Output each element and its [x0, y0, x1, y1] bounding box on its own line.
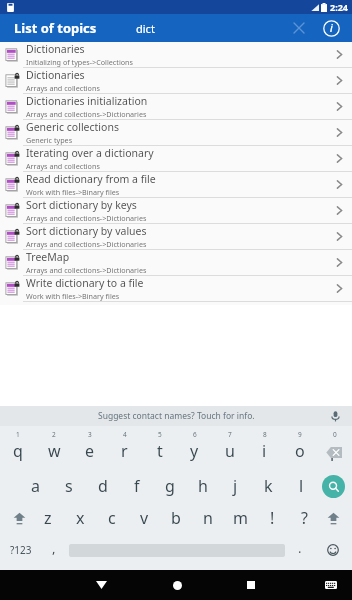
staticText: .: [298, 539, 302, 557]
staticText: Sort dictionary by keys: [26, 198, 137, 212]
staticText: q: [13, 440, 23, 462]
button[interactable]: Shift: [322, 507, 344, 529]
staticText: Generic types: [26, 135, 73, 145]
button[interactable]: m: [224, 502, 256, 534]
staticText: p: [330, 440, 340, 462]
staticText: Arrays and collections->Dictionaries: [26, 265, 147, 275]
staticText: 9: [298, 430, 302, 439]
button[interactable]: Read dictionary from a file: [0, 172, 352, 198]
button[interactable]: Dictionaries initialization: [0, 94, 352, 120]
button[interactable]: d: [86, 470, 120, 502]
button[interactable]: .: [288, 536, 312, 564]
button[interactable]: j: [219, 470, 252, 502]
staticText: u: [225, 440, 235, 462]
staticText: Suggest contact names? Touch for info.: [98, 410, 255, 422]
button[interactable]: Backspace: [322, 440, 346, 464]
staticText: Work with files->Binary files: [26, 187, 120, 197]
button[interactable]: Generic collections: [0, 120, 352, 146]
button[interactable]: Iterating over a dictionary: [0, 146, 352, 172]
staticText: List of topics: [14, 19, 97, 37]
staticText: x: [76, 507, 85, 529]
button[interactable]: 1: [0, 426, 36, 470]
button[interactable]: n: [192, 502, 224, 534]
button[interactable]: z: [32, 502, 64, 534]
staticText: !: [270, 507, 275, 529]
button[interactable]: a: [18, 470, 52, 502]
staticText: Sort dictionary by values: [26, 224, 147, 238]
staticText: Arrays and collections: [26, 161, 100, 171]
button[interactable]: 3: [72, 426, 107, 470]
button[interactable]: 5: [142, 426, 177, 470]
staticText: Initializing of types->Collections: [26, 57, 133, 67]
button[interactable]: Recent apps: [238, 572, 264, 598]
button[interactable]: 7: [212, 426, 247, 470]
button[interactable]: ?: [288, 502, 320, 534]
button[interactable]: 4: [107, 426, 142, 470]
staticText: w: [48, 440, 61, 462]
button[interactable]: 6: [177, 426, 212, 470]
button[interactable]: Dictionaries: [0, 68, 352, 94]
staticText: ?: [301, 507, 308, 529]
button[interactable]: s: [52, 470, 86, 502]
button[interactable]: c: [96, 502, 128, 534]
staticText: Arrays and collections: [26, 83, 100, 93]
button[interactable]: Back: [88, 572, 114, 598]
button[interactable]: v: [128, 502, 160, 534]
button[interactable]: 2: [36, 426, 72, 470]
staticText: m: [233, 507, 248, 529]
staticText: i: [262, 440, 267, 462]
button[interactable]: k: [252, 470, 285, 502]
staticText: i: [330, 21, 333, 35]
button[interactable]: ?123: [4, 536, 38, 564]
button[interactable]: !: [256, 502, 288, 534]
button[interactable]: f: [120, 470, 153, 502]
staticText: 0: [333, 430, 337, 439]
staticText: 1: [16, 430, 20, 439]
staticText: t: [157, 440, 163, 462]
button[interactable]: 8: [247, 426, 282, 470]
staticText: TreeMap: [26, 250, 70, 264]
staticText: e: [85, 440, 95, 462]
button[interactable]: Sort dictionary by keys: [0, 198, 352, 224]
staticText: j: [233, 475, 238, 497]
button[interactable]: Info: [318, 15, 344, 41]
staticText: f: [134, 475, 140, 497]
staticText: 4: [123, 430, 127, 439]
button[interactable]: ,: [42, 536, 66, 564]
button[interactable]: Dictionaries: [0, 42, 352, 68]
staticText: Write dictionary to a file: [26, 276, 144, 290]
staticText: z: [44, 507, 52, 529]
button[interactable]: Write dictionary to a file: [0, 276, 352, 302]
button[interactable]: Switch keyboard: [320, 574, 342, 596]
staticText: b: [171, 507, 181, 529]
button[interactable]: TreeMap: [0, 250, 352, 276]
staticText: h: [198, 475, 208, 497]
button[interactable]: Emoji: [322, 539, 344, 561]
staticText: l: [299, 475, 304, 497]
button[interactable]: Home: [164, 572, 190, 598]
staticText: y: [190, 440, 199, 462]
staticText: 5: [158, 430, 162, 439]
button[interactable]: x: [64, 502, 96, 534]
button[interactable]: h: [186, 470, 219, 502]
button[interactable]: 0: [317, 426, 352, 470]
button[interactable]: l: [285, 470, 318, 502]
button[interactable]: Shift: [8, 507, 30, 529]
button[interactable]: Clear search: [286, 15, 312, 41]
staticText: ,: [52, 539, 56, 557]
button[interactable]: b: [160, 502, 192, 534]
staticText: Arrays and collections->Dictionaries: [26, 239, 147, 249]
staticText: 3: [88, 430, 92, 439]
staticText: Arrays and collections->Dictionaries: [26, 109, 147, 119]
staticText: Dictionaries: [26, 68, 85, 82]
staticText: 8: [263, 430, 267, 439]
button[interactable]: g: [153, 470, 186, 502]
button[interactable]: Search: [322, 475, 345, 498]
button[interactable]: Sort dictionary by values: [0, 224, 352, 250]
button[interactable]: 9: [282, 426, 317, 470]
button[interactable]: Voice input: [326, 407, 344, 425]
staticText: 2:24: [330, 1, 348, 13]
staticText: Arrays and collections->Dictionaries: [26, 213, 147, 223]
staticText: v: [140, 507, 149, 529]
